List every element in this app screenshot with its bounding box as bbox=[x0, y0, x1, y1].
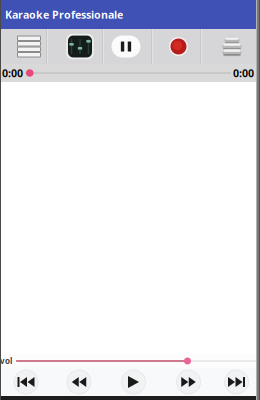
button[interactable]: Record bbox=[159, 32, 197, 60]
staticText: 0:00 bbox=[233, 66, 254, 80]
button[interactable]: Mixer bbox=[61, 32, 99, 60]
button[interactable]: Previous track bbox=[13, 370, 38, 394]
button[interactable]: Playlist bbox=[10, 32, 48, 60]
button[interactable]: Play bbox=[121, 370, 146, 394]
button[interactable]: Pause bbox=[107, 32, 145, 60]
button[interactable]: Fast forward bbox=[176, 370, 201, 394]
button[interactable]: Next track bbox=[224, 370, 249, 394]
button[interactable]: Rewind bbox=[66, 370, 91, 394]
staticText: Karaoke Professionale bbox=[5, 7, 123, 22]
staticText: vol bbox=[0, 356, 12, 366]
button[interactable]: Library bbox=[213, 32, 251, 60]
staticText: 0:00 bbox=[2, 66, 23, 80]
